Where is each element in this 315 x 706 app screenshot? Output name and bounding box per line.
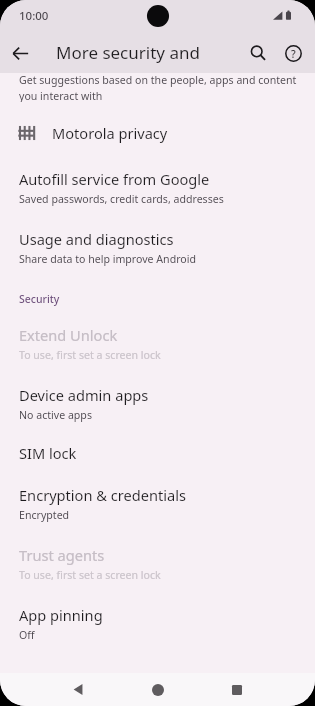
staticText: ? [291, 47, 296, 61]
button[interactable]: Encryption & credentials [0, 473, 315, 533]
button[interactable]: Motorola privacy [0, 109, 315, 157]
staticText: Security [19, 292, 60, 306]
staticText: you interact with [19, 89, 103, 102]
staticText: SIM lock [19, 443, 77, 463]
staticText: Encrypted [19, 508, 70, 522]
staticText: No active apps [19, 408, 92, 422]
button[interactable]: Help [277, 34, 309, 72]
button[interactable]: Back [62, 673, 95, 706]
button[interactable]: Usage and diagnostics [0, 217, 315, 277]
button[interactable]: Trust agents [0, 533, 315, 593]
staticText: Encryption & credentials [19, 485, 186, 505]
button[interactable]: SIM lock [0, 433, 315, 473]
button[interactable]: Extend Unlock [0, 313, 315, 373]
staticText: 10:00 [19, 8, 49, 24]
staticText: Extend Unlock [19, 325, 118, 345]
button[interactable]: Autofill service from Google [0, 157, 315, 217]
button[interactable]: Home [141, 673, 174, 706]
button[interactable]: Device admin apps [0, 373, 315, 433]
button[interactable]: Back [0, 33, 40, 73]
staticText: Trust agents [19, 545, 105, 565]
button[interactable]: Search [239, 34, 277, 72]
staticText: Usage and diagnostics [19, 229, 174, 249]
button[interactable]: App pinning [0, 593, 315, 653]
staticText: Saved passwords, credit cards, addresses [19, 192, 224, 206]
staticText: Device admin apps [19, 385, 149, 405]
staticText: Get suggestions based on the people, app… [19, 73, 297, 87]
staticText: Autofill service from Google [19, 169, 210, 189]
staticText: To use, first set a screen lock [19, 348, 161, 362]
staticText: To use, first set a screen lock [19, 568, 161, 582]
button[interactable]: Recent apps [220, 673, 253, 706]
staticText: Motorola privacy [52, 123, 168, 143]
button[interactable]: Get suggestions based on the people, app… [0, 73, 315, 109]
staticText: Off [19, 628, 35, 642]
staticText: More security and priva… [56, 41, 235, 64]
staticText: Share data to help improve Android [19, 252, 196, 266]
staticText: App pinning [19, 605, 103, 625]
